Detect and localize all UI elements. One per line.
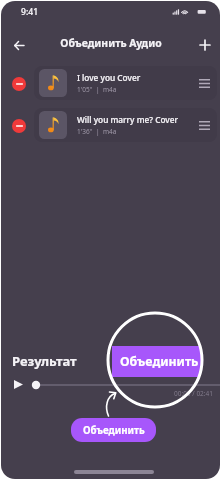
staticText: 1'36'' | m4a <box>77 127 117 136</box>
staticText: Результат <box>12 352 77 370</box>
staticText: 00:00 / 02:41 <box>161 389 213 398</box>
staticText: Объединить <box>83 424 145 437</box>
staticText: 9:41 <box>21 6 39 18</box>
button[interactable]: Reorder <box>194 115 214 135</box>
button[interactable]: Remove <box>12 119 26 133</box>
staticText: Объединить <box>120 353 199 370</box>
button[interactable]: Back <box>8 34 30 56</box>
button[interactable]: Объединить <box>112 346 202 377</box>
staticText: 1'05'' | m4a <box>77 85 117 94</box>
button[interactable]: Reorder <box>194 73 214 93</box>
button[interactable]: Remove <box>12 77 26 91</box>
button[interactable]: Will you marry me? Cover <box>34 108 217 142</box>
staticText: Объединить Аудио <box>60 36 162 50</box>
button[interactable]: Add <box>194 34 216 56</box>
staticText: Will you marry me? Cover <box>77 114 178 125</box>
button[interactable]: I love you Cover <box>34 66 217 100</box>
button[interactable]: Объединить <box>71 418 156 442</box>
button[interactable]: Play <box>14 380 23 389</box>
staticText: I love you Cover <box>77 72 141 83</box>
